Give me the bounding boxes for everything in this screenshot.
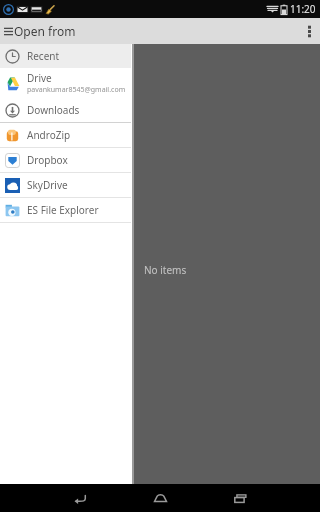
staticText: Drive — [27, 71, 52, 85]
staticText: SkyDrive — [27, 178, 68, 192]
button[interactable]: ES File Explorer — [0, 198, 131, 222]
button[interactable]: Recent — [0, 44, 131, 68]
staticText: Recent — [27, 49, 60, 63]
button[interactable]: SkyDrive — [0, 173, 131, 197]
button[interactable]: Downloads — [0, 98, 131, 122]
staticText: Open from — [14, 23, 76, 39]
button[interactable]: Drive — [0, 68, 131, 98]
button[interactable]: Recent apps — [223, 484, 257, 512]
button[interactable]: Home — [143, 484, 177, 512]
button[interactable]: Back — [63, 484, 97, 512]
button[interactable]: Navigation drawer — [0, 18, 16, 44]
staticText: 11:20 — [290, 2, 316, 16]
staticText: Dropbox — [27, 153, 68, 167]
staticText: AndroZip — [27, 128, 71, 142]
button[interactable]: More options — [298, 18, 320, 44]
button[interactable]: AndroZip — [0, 123, 131, 147]
staticText: pavankumar8545@gmail.com — [27, 85, 126, 95]
staticText: Downloads — [27, 103, 80, 117]
staticText: ES File Explorer — [27, 203, 99, 217]
button[interactable]: Dropbox — [0, 148, 131, 172]
staticText: No items — [144, 263, 187, 277]
